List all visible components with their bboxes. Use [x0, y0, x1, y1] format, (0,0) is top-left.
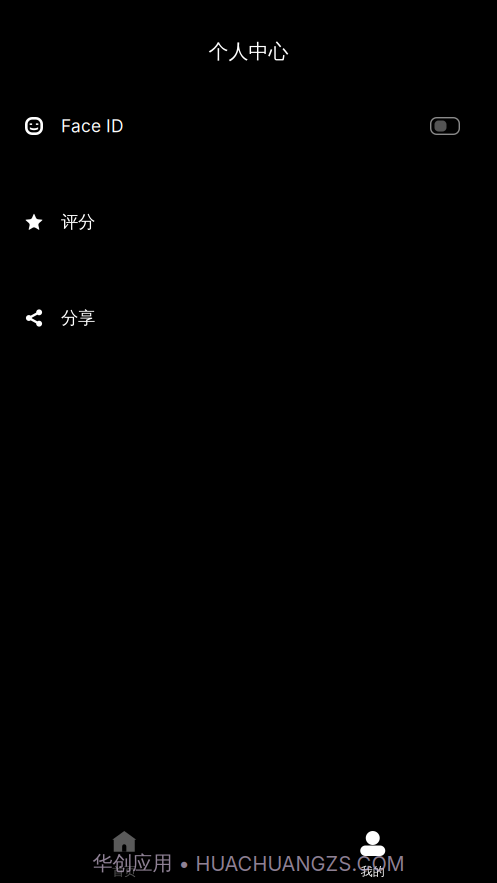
button[interactable]: 首页 — [0, 826, 248, 883]
staticText: 个人中心 — [208, 39, 288, 64]
button[interactable]: 我的 — [248, 826, 497, 883]
staticText: Face ID — [61, 115, 124, 136]
staticText: 我的 — [361, 864, 385, 879]
button[interactable]: 分享 — [0, 270, 497, 366]
staticText: 华创应用 • HUACHUANGZS.COM — [92, 851, 404, 876]
staticText: 评分 — [61, 211, 95, 233]
button[interactable]: Face ID — [0, 78, 497, 174]
button[interactable]: 评分 — [0, 174, 497, 270]
staticText: 分享 — [61, 307, 95, 329]
staticText: 首页 — [112, 864, 136, 879]
